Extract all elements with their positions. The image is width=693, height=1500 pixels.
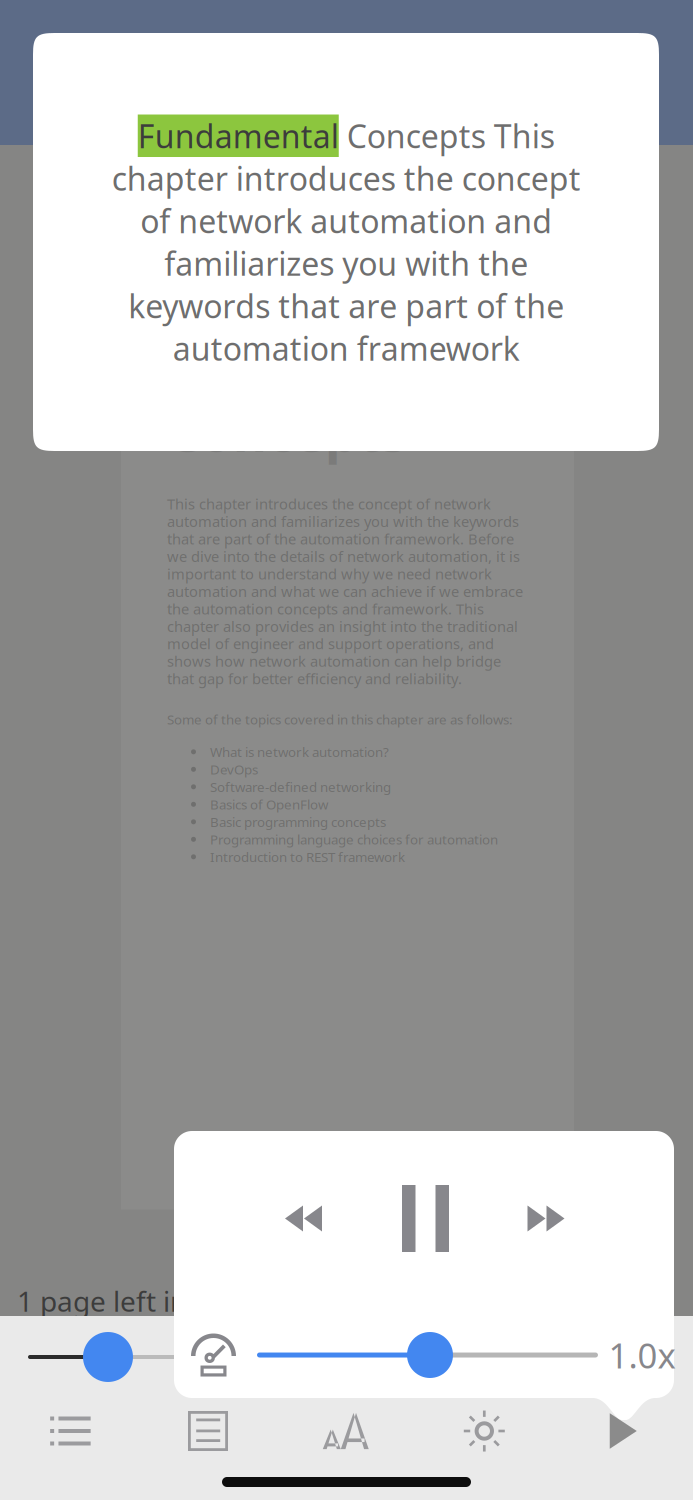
staticText: DevOps (210, 760, 258, 778)
staticText: Fundamental Concepts (167, 346, 513, 466)
staticText: Some of the topics covered in this chapt… (167, 710, 513, 728)
staticText: Software-defined networking (210, 778, 391, 796)
button[interactable]: Contents (10, 1394, 130, 1468)
staticText: Fundamental Concepts This chapter introd… (111, 114, 580, 369)
staticText: Introduction to REST framework (210, 848, 405, 866)
staticText: 1.0x (608, 1332, 675, 1378)
staticText: Programming language choices for automat… (210, 830, 498, 848)
button[interactable]: Page view (148, 1394, 268, 1468)
button[interactable]: Font size (286, 1394, 406, 1468)
button[interactable]: Rewind (251, 1170, 355, 1266)
staticText: This chapter introduces the concept of n… (167, 494, 523, 688)
button[interactable]: Read aloud (563, 1394, 683, 1468)
button[interactable]: Fast forward (494, 1170, 598, 1266)
staticText: Basic programming concepts (210, 813, 386, 831)
staticText: 1 page left in chapter (17, 1282, 295, 1320)
button[interactable]: Pause (373, 1170, 477, 1266)
staticText: What is network automation? (210, 743, 389, 761)
button[interactable]: Brightness (424, 1394, 544, 1468)
staticText: Basics of OpenFlow (210, 795, 328, 813)
